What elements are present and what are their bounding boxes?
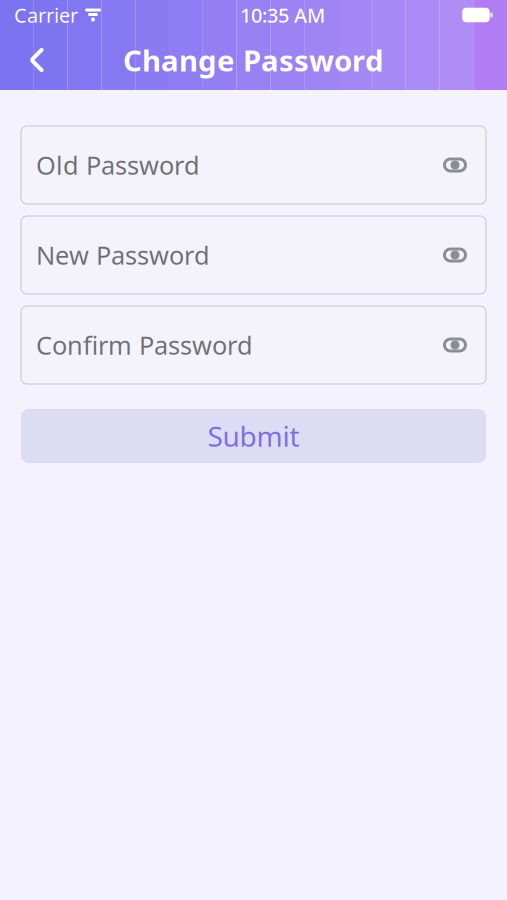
- staticText: Change Password: [123, 40, 384, 79]
- staticText: Old Password: [36, 148, 200, 182]
- staticText: Carrier: [14, 2, 78, 28]
- staticText: New Password: [36, 238, 210, 272]
- staticText: Submit: [207, 417, 299, 455]
- button[interactable]: Submit: [21, 409, 486, 463]
- button[interactable]: Back: [11, 34, 63, 86]
- button[interactable]: Old Password: [21, 126, 486, 204]
- button[interactable]: Confirm Password: [21, 306, 486, 384]
- staticText: 10:35 AM: [240, 2, 325, 28]
- staticText: Confirm Password: [36, 328, 253, 362]
- button[interactable]: New Password: [21, 216, 486, 294]
